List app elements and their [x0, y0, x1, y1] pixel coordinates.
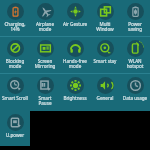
other: Airplane mode: [37, 3, 54, 20]
other: Multi Window: [97, 3, 114, 20]
staticText: Smart stay: [90, 58, 120, 64]
button[interactable]: U.power: [0, 111, 30, 146]
button[interactable]: General: [90, 74, 120, 110]
other: WLAN hotspot: [127, 40, 144, 57]
other: Hands-free mode: [67, 40, 84, 57]
button[interactable]: Multi Window: [90, 0, 120, 36]
button[interactable]: Blocking mode: [0, 37, 30, 73]
other: Screen Mirroring: [37, 40, 54, 57]
button[interactable]: WLAN hotspot: [120, 37, 150, 73]
button[interactable]: Brightness: [60, 74, 90, 110]
staticText: Power saving: [120, 21, 150, 33]
staticText: General: [90, 95, 120, 101]
button[interactable]: Smart Scroll: [0, 74, 30, 110]
staticText: Brightness: [60, 95, 90, 101]
button[interactable]: Charging, 14%: [0, 0, 30, 36]
button[interactable]: Airplane mode: [30, 0, 60, 36]
button[interactable]: Smart stay: [90, 37, 120, 73]
button[interactable]: Air Gesture: [60, 0, 90, 36]
staticText: Hands-free mode: [60, 58, 90, 70]
other: Data usage: [127, 77, 144, 94]
staticText: Airplane mode: [30, 21, 60, 33]
other: Air Gesture: [67, 3, 84, 20]
staticText: WLAN hotspot: [120, 58, 150, 70]
other: Power saving: [127, 3, 144, 20]
button[interactable]: Smart Pause: [30, 74, 60, 110]
other: Blocking mode: [7, 40, 24, 57]
button[interactable]: Power saving: [120, 0, 150, 36]
other: General: [97, 77, 114, 94]
other: Brightness: [67, 77, 84, 94]
other: Charging, 14%: [7, 3, 24, 20]
staticText: Smart Scroll: [0, 95, 30, 101]
staticText: Data usage: [120, 95, 150, 101]
staticText: Multi Window: [90, 21, 120, 33]
staticText: U.power: [0, 132, 30, 138]
other: Smart Pause: [37, 77, 54, 94]
button[interactable]: Screen Mirroring: [30, 37, 60, 73]
other: U.power: [7, 114, 24, 131]
button[interactable]: Data usage: [120, 74, 150, 110]
staticText: Charging, 14%: [0, 21, 30, 33]
staticText: Blocking mode: [0, 58, 30, 70]
other: Smart stay: [97, 40, 114, 57]
staticText: Smart Pause: [30, 95, 60, 107]
staticText: Air Gesture: [60, 21, 90, 27]
other: Smart Scroll: [7, 77, 24, 94]
button[interactable]: Hands-free mode: [60, 37, 90, 73]
staticText: Screen Mirroring: [30, 58, 60, 70]
